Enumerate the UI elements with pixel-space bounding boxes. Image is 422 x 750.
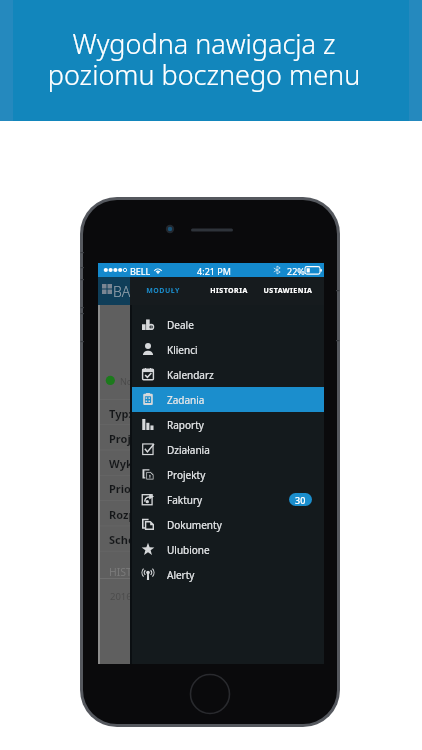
- button[interactable]: Klienci: [130, 337, 324, 362]
- staticText: 22%: [287, 265, 305, 277]
- staticText: Proj: [109, 431, 131, 446]
- button[interactable]: Kalendarz: [130, 362, 324, 387]
- staticText: Faktury: [167, 493, 203, 507]
- staticText: BELL: [130, 265, 151, 277]
- staticText: BAS: [113, 282, 138, 301]
- staticText: Dokumenty: [167, 518, 222, 532]
- button[interactable]: Faktury: [130, 487, 324, 512]
- staticText: Wygodna nawigacja z: [0, 25, 415, 62]
- staticText: Kalendarz: [167, 368, 214, 382]
- button[interactable]: HISTORIA: [205, 277, 253, 305]
- staticText: Projekty: [167, 468, 206, 482]
- button[interactable]: Ulubione: [130, 537, 324, 562]
- button[interactable]: Działania: [130, 437, 324, 462]
- button[interactable]: Dokumenty: [130, 512, 324, 537]
- staticText: Raporty: [167, 418, 204, 432]
- staticText: 4:21 PM: [101, 265, 327, 277]
- button[interactable]: Projekty: [130, 462, 324, 487]
- button[interactable]: MODUŁY: [139, 277, 187, 305]
- button[interactable]: Alerty: [130, 562, 324, 587]
- staticText: Deale: [167, 318, 194, 332]
- button[interactable]: Deale: [130, 312, 324, 337]
- staticText: Działania: [167, 443, 210, 457]
- staticText: poziomu bocznego menu: [0, 56, 415, 93]
- staticText: Zadania: [167, 393, 205, 407]
- staticText: HIST: [109, 565, 132, 579]
- staticText: 30: [295, 494, 306, 506]
- staticText: Rozp: [109, 507, 136, 522]
- staticText: Klienci: [167, 343, 198, 357]
- staticText: Prio: [109, 481, 131, 496]
- staticText: Alerty: [167, 568, 195, 582]
- button[interactable]: USTAWIENIA: [258, 277, 318, 305]
- staticText: Sche: [109, 532, 135, 547]
- staticText: 2016: [110, 590, 132, 603]
- staticText: Ulubione: [167, 543, 210, 557]
- staticText: No: [120, 375, 133, 387]
- staticText: Typ:: [109, 406, 132, 421]
- staticText: Wyk: [109, 456, 133, 471]
- button[interactable]: Raporty: [130, 412, 324, 437]
- button[interactable]: Zadania: [130, 387, 324, 412]
